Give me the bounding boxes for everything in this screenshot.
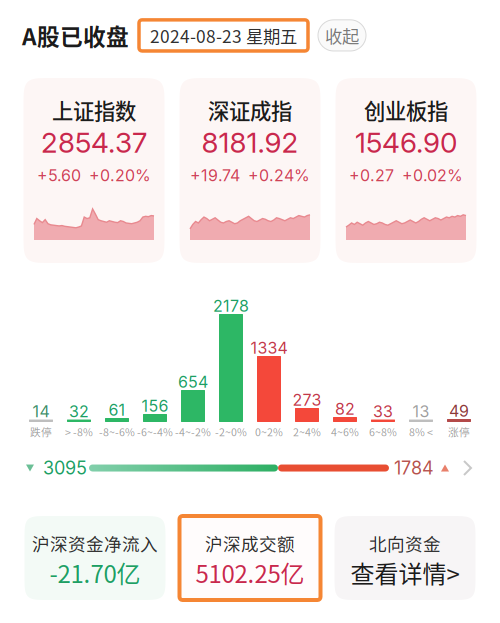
staticText: A股已收盘 — [22, 19, 129, 52]
staticText: 0~2% — [255, 424, 283, 439]
staticText: 654 — [178, 372, 208, 392]
staticText: +5.60 — [37, 166, 81, 185]
staticText: 2~4% — [293, 424, 321, 439]
staticText: > -8% — [65, 424, 93, 439]
staticText: 涨停 — [448, 424, 470, 439]
button[interactable]: 创业板指 — [335, 78, 476, 263]
staticText: 收起 — [325, 23, 359, 48]
button[interactable]: 沪深成交额 — [179, 516, 320, 600]
staticText: +19.74 — [190, 166, 240, 185]
staticText: 82 — [335, 399, 355, 419]
button[interactable]: 沪深资金净流入 — [24, 516, 165, 600]
staticText: 13 — [412, 402, 429, 421]
staticText: 2024-08-23 星期五 — [150, 23, 297, 48]
staticText: 3095 — [43, 457, 87, 479]
staticText: 1784 — [394, 457, 434, 479]
staticText: 273 — [292, 390, 321, 410]
button[interactable]: 深证成指 — [179, 78, 320, 263]
staticText: 8181.92 — [201, 126, 298, 159]
staticText: 1546.90 — [355, 126, 457, 159]
staticText: +0.20% — [89, 166, 151, 185]
staticText: 8% < — [409, 424, 433, 439]
staticText: 查看详情> — [350, 555, 459, 590]
button[interactable]: 收起 — [318, 20, 366, 51]
staticText: 49 — [449, 401, 469, 421]
staticText: 跌停 — [30, 424, 52, 439]
staticText: -6~-4% — [137, 424, 173, 439]
staticText: 沪深成交额 — [205, 530, 295, 556]
staticText: 14 — [32, 402, 49, 421]
staticText: 32 — [69, 402, 89, 421]
staticText: -8~-6% — [99, 424, 135, 439]
staticText: 61 — [108, 400, 125, 420]
staticText: 北向资金 — [369, 530, 441, 556]
staticText: 沪深资金净流入 — [32, 530, 158, 556]
staticText: -2~0% — [215, 424, 247, 439]
button[interactable]: 上证指数 — [23, 78, 164, 263]
staticText: 1334 — [250, 338, 287, 358]
staticText: 33 — [373, 402, 393, 421]
staticText: +0.24% — [248, 166, 310, 185]
staticText: 上证指数 — [52, 95, 136, 125]
staticText: 5102.25亿 — [195, 555, 304, 590]
staticText: 4~6% — [331, 424, 359, 439]
staticText: +0.27 — [349, 166, 394, 185]
staticText: 2178 — [213, 296, 249, 316]
staticText: 156 — [141, 396, 168, 416]
staticText: -21.70亿 — [49, 555, 140, 590]
staticText: +0.02% — [402, 166, 463, 185]
staticText: 创业板指 — [364, 95, 448, 125]
staticText: 6~8% — [369, 424, 397, 439]
staticText: -4~-2% — [175, 424, 211, 439]
button[interactable]: 北向资金 — [334, 516, 475, 600]
staticText: 深证成指 — [208, 95, 292, 125]
staticText: 2854.37 — [41, 126, 147, 159]
